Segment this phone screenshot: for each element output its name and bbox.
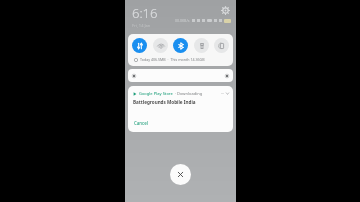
button[interactable]: Auto rotate <box>214 38 229 53</box>
button[interactable]: Close notification shade <box>170 164 191 185</box>
staticText: 00.0KB/s <box>175 18 190 23</box>
button[interactable]: Cancel <box>133 119 149 127</box>
button[interactable]: Mobile data <box>132 38 147 53</box>
staticText: Google Play Store <box>139 91 173 96</box>
button[interactable]: Flashlight <box>194 38 209 53</box>
staticText: · Downloading <box>175 91 203 96</box>
button[interactable]: Brightness <box>128 69 233 82</box>
staticText: Today 406.5MB · This month 14.36GB <box>140 57 205 62</box>
button[interactable]: Google Play Store <box>128 86 233 132</box>
staticText: Cancel <box>134 120 148 126</box>
staticText: Fri, 14 Jan <box>132 23 151 28</box>
button[interactable]: Bluetooth <box>173 38 188 53</box>
staticText: ··· <box>221 91 225 96</box>
staticText: 6:16 <box>132 4 158 22</box>
button[interactable]: Wi-Fi <box>153 38 168 53</box>
staticText: Battlegrounds Mobile India <box>133 99 196 105</box>
button[interactable]: Settings <box>221 6 230 15</box>
